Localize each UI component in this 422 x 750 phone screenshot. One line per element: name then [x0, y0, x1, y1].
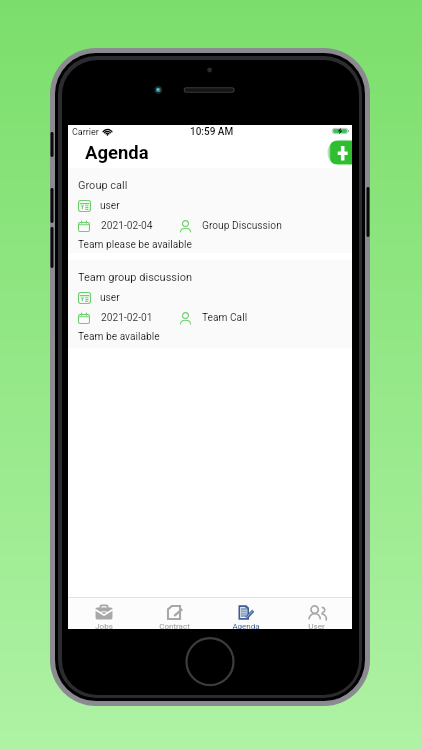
staticText: Agenda [85, 142, 149, 164]
staticText: Carrier [72, 127, 99, 138]
staticText: Team please be available [78, 239, 192, 251]
button[interactable]: User [281, 598, 352, 629]
button[interactable]: Agenda [210, 598, 281, 629]
staticText: Team Call [202, 312, 248, 324]
button[interactable]: Group call [68, 168, 352, 253]
staticText: user [100, 200, 120, 212]
button[interactable]: Add agenda [325, 139, 352, 165]
staticText: Group Discussion [202, 220, 282, 232]
staticText: 2021-02-04 [101, 220, 153, 232]
button[interactable]: Team group discussion [68, 260, 352, 348]
staticText: Group call [78, 179, 128, 192]
staticText: Team group discussion [78, 271, 193, 284]
staticText: Contract [159, 622, 190, 629]
staticText: Agenda [232, 622, 260, 629]
button[interactable]: Jobs [68, 598, 139, 629]
button[interactable]: Contract [139, 598, 210, 629]
staticText: User [308, 622, 325, 629]
staticText: 2021-02-01 [101, 312, 153, 324]
staticText: 10:59 AM [190, 126, 234, 138]
staticText: Team be available [78, 331, 160, 343]
staticText: user [100, 292, 120, 304]
staticText: Jobs [95, 622, 113, 629]
